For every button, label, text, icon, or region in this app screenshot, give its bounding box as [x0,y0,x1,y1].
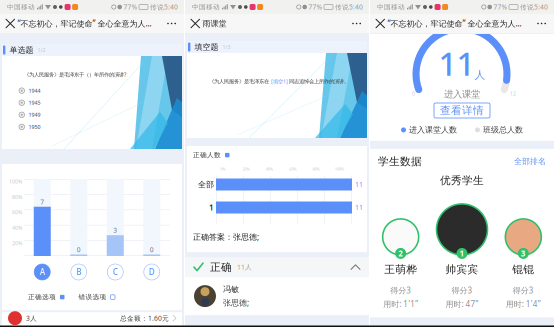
staticText: 王萌桦 [384,263,417,276]
staticText: 0 [412,90,415,97]
staticText: 锟锟 [512,263,534,276]
button[interactable]: 更多 [161,14,184,33]
staticText: 帅宾宾 [445,263,478,276]
button[interactable]: 关闭 [370,14,387,33]
staticText: 填空题 [194,42,218,52]
staticText: 0 [150,245,154,254]
staticText: 全部 [198,180,214,189]
staticText: 60% [289,166,296,171]
staticText: 1945 [28,99,40,106]
staticText: 11 [355,203,363,212]
button[interactable]: 更多 [346,14,369,33]
staticText: 班级总人数 [483,125,523,135]
staticText: 1950 [28,123,40,130]
staticText: 80% [312,166,319,171]
button[interactable]: C [97,264,133,280]
staticText: 进入课堂人数 [409,125,457,135]
button[interactable]: B [60,264,97,280]
staticText: 7 [40,197,44,206]
staticText: 张思德; [223,297,249,308]
staticText: 得分3 [390,285,411,296]
staticText: 3 [521,248,526,259]
staticText: 12 [510,90,516,97]
staticText: A [40,267,45,277]
staticText: 11人 [237,263,252,272]
staticText: 正确人数 [193,151,221,159]
staticText: 60% [12,209,22,216]
staticText: 学生数据 [378,155,422,168]
button[interactable]: 全部排名 [514,156,546,166]
staticText: 冯敏 [223,284,239,294]
staticText: 《为人民服务》是毛泽东于（）年所作的演讲? [24,71,126,78]
staticText: 11 [355,180,363,189]
staticText: B [76,267,81,277]
staticText: 单选题 [9,45,33,55]
staticText: 正确 [210,261,232,274]
button[interactable]: 查看详情 [434,103,490,118]
staticText: [填空1] [269,78,289,85]
staticText: 全部排名 [514,156,546,166]
staticText: 80% [12,193,22,200]
staticText: 0 [77,245,81,254]
staticText: 人 [474,68,485,81]
button[interactable]: 关闭 [0,14,17,33]
staticText: 优秀学生 [440,174,484,187]
staticText: 40% [12,224,22,231]
staticText: 40% [266,166,273,171]
staticText: 进入课堂 [444,88,480,100]
staticText: 得分3 [513,285,534,296]
staticText: C [113,267,118,277]
staticText: 11 [438,42,474,84]
staticText: 用时: 1'4” [506,299,541,309]
staticText: 20% [12,240,22,247]
staticText: 1944 [28,87,40,94]
staticText: 1/2 [37,46,45,54]
staticText: 3 [113,226,117,235]
staticText: 1949 [28,111,40,118]
staticText: 1 [209,202,214,213]
staticText: 中国移动 [377,3,405,11]
staticText: 同志追悼会上所作的演讲。 [289,78,349,85]
staticText: 1 [459,248,464,259]
staticText: 得分3 [451,285,472,296]
staticText: 中国移动 [192,3,220,11]
staticText: 传说5:40 [335,3,363,11]
staticText: 3人 [26,314,37,323]
staticText: 用时: 1'1” [383,299,418,309]
button[interactable]: 正确 [185,257,369,277]
staticText: 查看详情 [440,104,484,117]
staticText: 传说5:40 [520,3,548,11]
staticText: 0% [220,166,225,171]
staticText: 77% [493,3,507,11]
staticText: 错误选项 [78,293,106,301]
button[interactable]: D [133,264,170,280]
staticText: 100% [335,166,344,171]
staticText: 2 [398,248,403,259]
staticText: 20% [242,166,249,171]
staticText: 中国移动 [7,3,35,11]
staticText: D [149,267,155,277]
staticText: “不忘初心，牢记使命” 全心全意为人民… [17,18,158,29]
staticText: 正确选项 [28,293,56,301]
staticText: 100% [9,178,22,185]
staticText: “不忘初心，牢记使命” 全心全意为人民… [387,18,528,29]
staticText: 1/3 [222,43,230,51]
staticText: 《为人民服务》是毛泽东在 [209,78,269,85]
staticText: 用时: 47” [445,299,478,309]
staticText: 雨课堂 [202,19,226,28]
button[interactable]: 关闭 [185,14,202,33]
staticText: 传说5:40 [150,3,178,11]
button[interactable]: 更多 [531,14,554,33]
staticText: 正确答案：张思德; [193,231,259,242]
button[interactable]: A [24,264,60,280]
staticText: 总金额：1.60元 [120,314,169,323]
staticText: 77% [123,3,137,11]
button[interactable]: 冯敏 [185,277,369,315]
staticText: 77% [308,3,322,11]
